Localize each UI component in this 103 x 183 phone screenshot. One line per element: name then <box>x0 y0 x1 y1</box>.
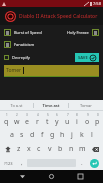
button[interactable]: 3 <box>22 111 32 128</box>
staticText: Decrepify <box>12 55 30 60</box>
button[interactable]: 9 <box>82 111 92 128</box>
button[interactable]: n <box>66 142 77 156</box>
staticText: u <box>65 117 70 127</box>
button[interactable]: . <box>76 156 87 170</box>
staticText: 9 <box>87 113 89 117</box>
staticText: w <box>14 117 20 127</box>
button[interactable]: m <box>77 142 88 156</box>
button[interactable]: a <box>6 128 17 142</box>
button[interactable]: 1 <box>1 111 12 128</box>
staticText: l <box>91 130 93 140</box>
staticText: Tomar <box>80 103 92 108</box>
staticText: 0 <box>97 113 99 117</box>
button[interactable]: j <box>67 128 77 142</box>
button[interactable]: b <box>55 142 66 156</box>
button[interactable]: h <box>57 128 67 142</box>
button[interactable]: Holy Freeze <box>67 29 99 36</box>
button[interactable]: Backspace <box>88 142 102 156</box>
staticText: 4 <box>37 113 39 117</box>
staticText: o <box>85 117 90 127</box>
staticText: Diablo II Attack Speed Calculator <box>19 13 98 20</box>
button[interactable]: Burst of Speed <box>4 29 67 36</box>
staticText: 1 <box>6 113 8 117</box>
button[interactable]: z <box>14 142 24 156</box>
staticText: v <box>48 144 52 154</box>
staticText: c <box>37 144 41 154</box>
button[interactable]: 0 <box>92 111 102 128</box>
button[interactable]: 4 <box>32 111 42 128</box>
staticText: . <box>81 159 83 167</box>
staticText: , <box>21 159 23 167</box>
button[interactable]: f <box>37 128 47 142</box>
button[interactable]: g <box>47 128 57 142</box>
button[interactable]: x <box>24 142 34 156</box>
button[interactable]: Shift <box>1 142 14 156</box>
button[interactable]: k <box>77 128 87 142</box>
button[interactable]: Tomer <box>4 65 99 76</box>
button[interactable]: Decrepify <box>4 55 30 60</box>
staticText: 2 <box>16 113 18 117</box>
staticText: 6 <box>56 113 58 117</box>
button[interactable]: Recents <box>74 170 87 183</box>
button[interactable]: 8 <box>72 111 82 128</box>
staticText: ?123 <box>4 161 13 166</box>
staticText: 7:58 <box>93 1 101 6</box>
button[interactable]: 7 <box>62 111 72 128</box>
staticText: i <box>76 117 78 127</box>
staticText: To a.st <box>10 103 23 108</box>
staticText: k <box>80 130 84 140</box>
staticText: m <box>79 144 86 154</box>
staticText: r <box>36 117 39 127</box>
staticText: Time.ast <box>42 103 60 108</box>
button[interactable]: , <box>16 156 27 170</box>
staticText: t <box>46 117 49 127</box>
staticText: y <box>55 117 59 127</box>
button[interactable]: 2 <box>12 111 22 128</box>
staticText: p <box>95 117 100 127</box>
button[interactable]: 6 <box>52 111 62 128</box>
staticText: Holy Freeze <box>67 30 89 35</box>
staticText: e <box>25 117 29 127</box>
button[interactable]: 5 <box>42 111 52 128</box>
staticText: n <box>69 144 74 154</box>
staticText: z <box>17 144 21 154</box>
button[interactable]: v <box>44 142 55 156</box>
staticText: a <box>10 130 14 140</box>
button[interactable]: To a.st <box>0 100 33 110</box>
staticText: 8 <box>76 113 78 117</box>
staticText: Fanaticism <box>14 42 35 47</box>
staticText: g <box>50 130 55 140</box>
button[interactable]: Back <box>16 170 29 183</box>
staticText: q <box>4 117 9 127</box>
staticText: b <box>58 144 63 154</box>
button[interactable]: d <box>27 128 37 142</box>
staticText: Tomer <box>6 67 22 74</box>
button[interactable]: Home <box>45 170 58 183</box>
button[interactable]: s <box>17 128 27 142</box>
staticText: j <box>71 130 73 140</box>
staticText: h <box>60 130 65 140</box>
staticText: SAVE <box>78 55 88 60</box>
button[interactable]: Time.ast <box>34 100 68 110</box>
button[interactable]: Tomar <box>69 100 103 110</box>
staticText: 7 <box>67 113 69 117</box>
staticText: 3 <box>26 113 28 117</box>
button[interactable]: SAVE <box>75 53 99 62</box>
staticText: 5 <box>47 113 49 117</box>
staticText: d <box>30 130 35 140</box>
button[interactable]: Fanaticism <box>4 41 99 48</box>
staticText: s <box>20 130 24 140</box>
staticText: x <box>27 144 31 154</box>
button[interactable]: l <box>87 128 97 142</box>
staticText: f <box>41 130 44 140</box>
button[interactable]: Enter <box>87 156 102 170</box>
button[interactable]: ?123 <box>1 156 16 170</box>
staticText: Burst of Speed <box>14 30 42 35</box>
button[interactable]: c <box>34 142 44 156</box>
